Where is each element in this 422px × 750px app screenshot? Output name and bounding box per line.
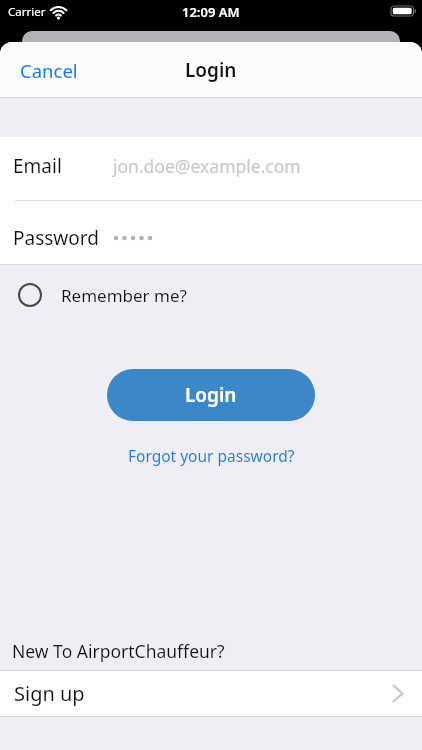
staticText: Cancel — [20, 58, 78, 83]
button[interactable]: Password — [0, 201, 422, 265]
staticText: 12:09 AM — [182, 3, 240, 21]
button[interactable]: Cancel — [0, 50, 90, 91]
staticText: Login — [185, 382, 237, 408]
button[interactable]: Forgot your password? — [120, 437, 303, 474]
button[interactable]: Remember me? — [0, 265, 422, 325]
staticText: Carrier — [8, 4, 46, 20]
staticText: Sign up — [14, 680, 85, 707]
button[interactable]: Login — [107, 369, 315, 421]
staticText: Password — [13, 225, 99, 251]
button[interactable]: Email — [0, 137, 422, 201]
staticText: Remember me? — [61, 284, 187, 307]
staticText: Login — [185, 57, 237, 83]
staticText: Forgot your password? — [128, 445, 295, 466]
button[interactable]: Sign up — [0, 670, 422, 717]
staticText: New To AirportChauffeur? — [12, 639, 225, 663]
staticText: jon.doe@example.com — [113, 154, 301, 178]
staticText: Email — [13, 153, 62, 179]
